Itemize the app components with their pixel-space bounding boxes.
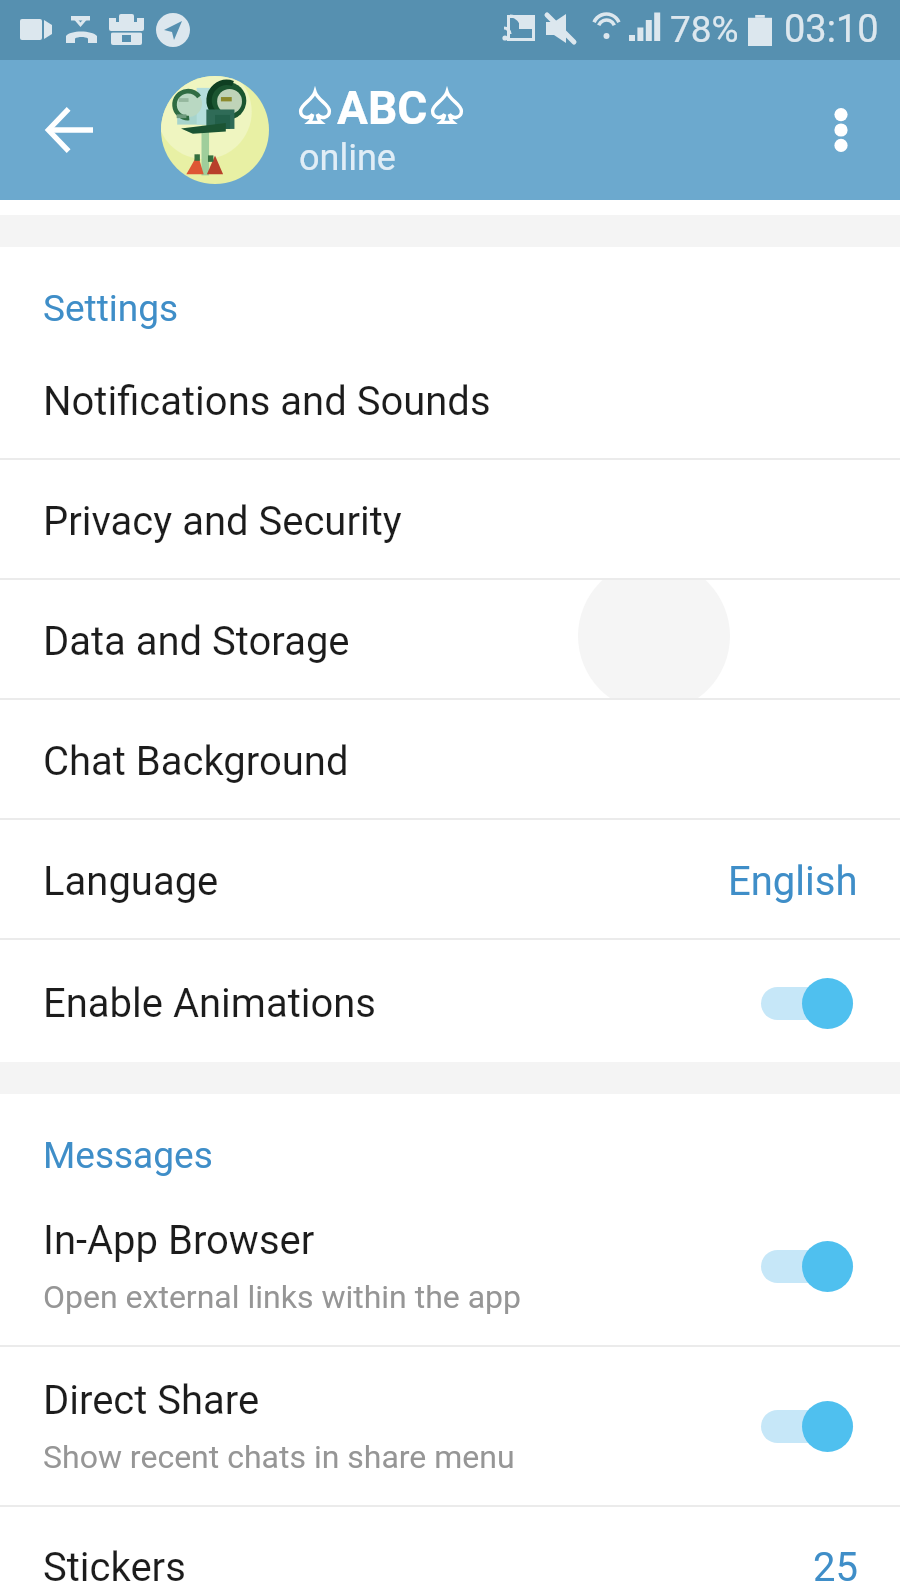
button[interactable]: Notifications and Sounds	[0, 340, 900, 458]
staticText: Settings	[43, 287, 179, 330]
staticText: Privacy and Security	[43, 498, 402, 545]
staticText: Direct Share	[43, 1377, 260, 1424]
button[interactable]: In-App Browser	[0, 1187, 900, 1345]
staticText: Enable Animations	[43, 980, 377, 1027]
button[interactable]: Privacy and Security	[0, 460, 900, 578]
button[interactable]: Back	[22, 82, 118, 178]
button[interactable]: Enable Animations	[0, 940, 900, 1062]
staticText: 03:10	[784, 7, 879, 52]
staticText: Messages	[43, 1134, 213, 1177]
staticText: Data and Storage	[43, 618, 350, 665]
button[interactable]: Chat Background	[0, 700, 900, 818]
staticText: Show recent chats in share menu	[43, 1438, 515, 1476]
staticText: Language	[43, 858, 219, 905]
button[interactable]: Stickers	[0, 1507, 900, 1596]
staticText: ABC	[337, 81, 428, 135]
staticText: 25	[813, 1544, 858, 1591]
staticText: Notifications and Sounds	[43, 378, 491, 425]
staticText: 78%	[670, 8, 739, 51]
button[interactable]: Language	[0, 820, 900, 938]
staticText: online	[299, 137, 396, 179]
staticText: In-App Browser	[43, 1217, 315, 1264]
button[interactable]: Direct Share	[0, 1347, 900, 1505]
button[interactable]: More options	[793, 82, 889, 178]
staticText: Chat Background	[43, 738, 349, 785]
staticText: English	[728, 858, 858, 905]
staticText: Open external links within the app	[43, 1278, 522, 1316]
staticText: Stickers	[43, 1544, 186, 1591]
button[interactable]: Data and Storage	[0, 580, 900, 698]
